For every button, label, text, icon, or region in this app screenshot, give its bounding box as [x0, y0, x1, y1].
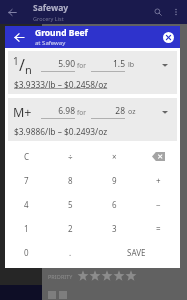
- staticText: −: [156, 199, 161, 210]
- button[interactable]: M+: [8, 98, 177, 141]
- staticText: =: [156, 223, 161, 234]
- button[interactable]: +: [136, 168, 180, 192]
- staticText: PRIORITY: [48, 273, 73, 280]
- button[interactable]: 4: [5, 192, 48, 216]
- button[interactable]: 1: [8, 51, 177, 94]
- staticText: $3.9333/lb – $0.2458/oz: [14, 79, 108, 90]
- button[interactable]: 6: [92, 192, 136, 216]
- staticText: 3: [112, 223, 117, 234]
- staticText: oz: [128, 107, 136, 117]
- staticText: .: [69, 247, 72, 258]
- staticText: for: [77, 108, 86, 117]
- button[interactable]: =: [136, 216, 180, 240]
- staticText: 8: [68, 175, 73, 186]
- staticText: ×: [112, 151, 117, 162]
- staticText: M+: [13, 104, 32, 121]
- staticText: ÷: [68, 151, 73, 162]
- staticText: 5.90: [41, 58, 75, 70]
- staticText: 2: [68, 223, 73, 234]
- staticText: for: [77, 61, 86, 70]
- button[interactable]: More options: [169, 5, 183, 19]
- staticText: SAVE: [127, 247, 146, 258]
- staticText: Grocery List: [33, 15, 64, 22]
- staticText: 6.98: [41, 105, 75, 117]
- staticText: /: [19, 54, 25, 76]
- staticText: 28: [91, 105, 125, 117]
- staticText: lb: [128, 60, 135, 70]
- button[interactable]: 0: [5, 240, 48, 264]
- button[interactable]: 5: [48, 192, 92, 216]
- button[interactable]: 8: [48, 168, 92, 192]
- button[interactable]: 1: [5, 216, 48, 240]
- staticText: 0: [24, 247, 29, 258]
- staticText: 1: [24, 223, 29, 234]
- button[interactable]: Back: [5, 5, 19, 19]
- button[interactable]: −: [136, 192, 180, 216]
- button[interactable]: Back: [10, 28, 28, 46]
- button[interactable]: Close: [159, 28, 177, 46]
- staticText: $3.9886/lb – $0.2493/oz: [14, 126, 108, 137]
- staticText: at Safeway: [35, 39, 66, 47]
- button[interactable]: 7: [5, 168, 48, 192]
- button[interactable]: Search: [151, 5, 165, 19]
- button[interactable]: 9: [92, 168, 136, 192]
- staticText: 9: [112, 175, 117, 186]
- staticText: 5: [68, 199, 73, 210]
- staticText: 4: [24, 199, 29, 210]
- staticText: C: [24, 151, 30, 162]
- button[interactable]: 2: [48, 216, 92, 240]
- staticText: Safeway: [33, 2, 69, 14]
- button[interactable]: Backspace: [136, 144, 180, 168]
- staticText: 7: [24, 175, 29, 186]
- staticText: 1.5: [91, 58, 125, 70]
- staticText: 1: [13, 54, 19, 68]
- button[interactable]: SAVE: [92, 240, 180, 264]
- staticText: n: [25, 62, 32, 77]
- staticText: 6: [112, 199, 117, 210]
- button[interactable]: ÷: [48, 144, 92, 168]
- staticText: Ground Beef: [35, 27, 88, 39]
- button[interactable]: C: [5, 144, 48, 168]
- button[interactable]: 3: [92, 216, 136, 240]
- staticText: +: [156, 175, 161, 186]
- button[interactable]: ×: [92, 144, 136, 168]
